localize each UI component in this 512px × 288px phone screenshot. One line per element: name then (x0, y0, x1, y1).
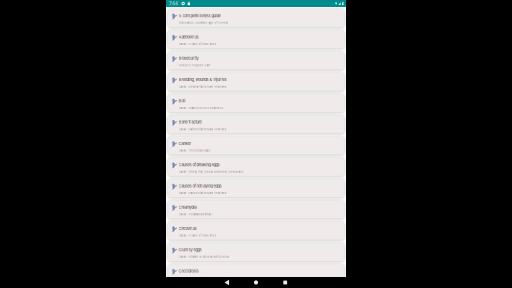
button[interactable]: Causes of not laying eggs (168, 179, 344, 197)
staticText: Causes of not laying eggs (178, 183, 221, 188)
button[interactable]: A complete illness guide (168, 9, 344, 27)
staticText: Cause: Stress, flat, house problem, new … (178, 170, 243, 173)
staticText: Cause: Vitamin & mineral deficiency (178, 255, 228, 258)
button[interactable]: Causes of breaking eggs (168, 158, 344, 176)
staticText: Causes of breaking eggs (178, 162, 219, 167)
staticText: Canker (178, 141, 191, 146)
staticText: 7:44 (169, 1, 178, 6)
staticText: Cause: Various factors are involved (178, 128, 226, 131)
staticText: Clumsy eggs (178, 247, 201, 252)
button[interactable]: Biosecurity (168, 51, 344, 70)
button[interactable]: Circovirus (168, 222, 344, 240)
staticText: Cause: Trichomoniasis (178, 149, 209, 152)
button[interactable]: Home (241, 277, 271, 288)
staticText: Adenovirus (178, 35, 198, 39)
staticText: Bleeding, wounds & injuries (178, 77, 226, 82)
staticText: Boil (178, 98, 185, 103)
staticText: Subject: Pigeon care (178, 64, 210, 67)
button[interactable]: Bleeding, wounds & injuries (168, 73, 344, 91)
button[interactable]: Recent apps (271, 277, 300, 288)
staticText: Cause: Eimeria species (178, 276, 210, 280)
staticText: Cause: Several factors are involved (178, 85, 226, 88)
staticText: A complete illness guide (178, 13, 220, 18)
staticText: Discussion: Common age of illness (178, 21, 227, 24)
button[interactable]: Boil (168, 94, 344, 112)
staticText: Circovirus (178, 226, 196, 231)
staticText: Cause: A type of DNA virus (178, 234, 215, 237)
staticText: Cause: A type of DNA virus (178, 42, 215, 46)
button[interactable]: Canker (168, 137, 344, 155)
staticText: Cause: Various factors are involved (178, 191, 226, 195)
staticText: Cause: Chlamydia psittaci (178, 213, 212, 216)
staticText: Cause: Staphylococcus aureus (178, 106, 222, 109)
button[interactable]: Coccidiosis (168, 264, 344, 282)
button[interactable]: Bone fracture (168, 115, 344, 133)
staticText: Chlamydia (178, 205, 196, 210)
button[interactable]: Back (212, 277, 241, 288)
button[interactable]: Chlamydia (168, 200, 344, 218)
staticText: Biosecurity (178, 56, 198, 61)
staticText: Coccidiosis (178, 269, 198, 273)
button[interactable]: Adenovirus (168, 30, 344, 48)
button[interactable]: Clumsy eggs (168, 243, 344, 261)
staticText: Bone fracture (178, 120, 201, 124)
